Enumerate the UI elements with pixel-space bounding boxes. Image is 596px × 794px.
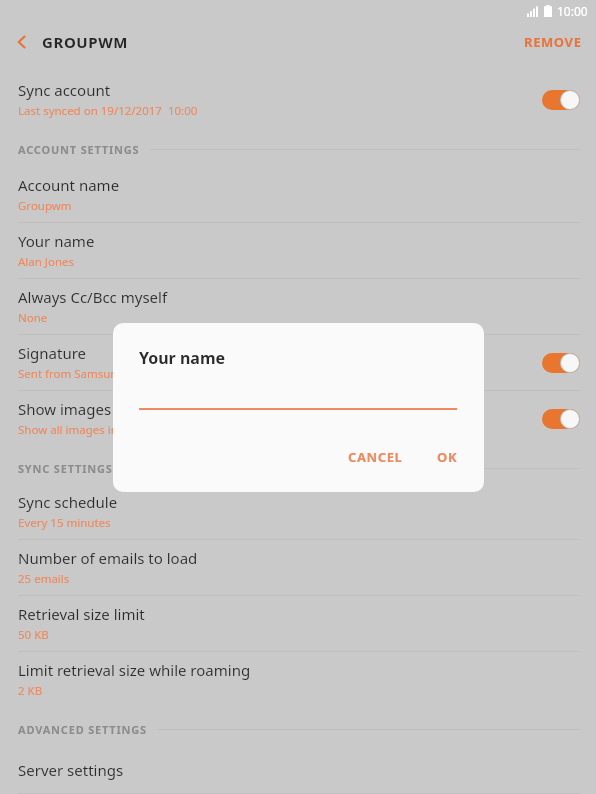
staticText: Signature xyxy=(18,343,87,363)
staticText: Last synced on 19/12/2017 10:00 xyxy=(18,103,198,119)
staticText: Server settings xyxy=(18,760,124,780)
button[interactable]: Retrieval size limit xyxy=(0,596,596,652)
staticText: 10:00 xyxy=(557,3,588,19)
button[interactable]: Show images xyxy=(0,391,596,446)
button[interactable]: Your name xyxy=(0,223,596,279)
staticText: Show all images in emails xyxy=(18,422,156,438)
button[interactable]: Toggle Signature xyxy=(542,353,580,373)
staticText: CANCEL xyxy=(348,448,403,466)
button[interactable]: Toggle Sync account xyxy=(542,90,580,110)
button[interactable]: Number of emails to load xyxy=(0,540,596,596)
staticText: Retrieval size limit xyxy=(18,604,145,624)
staticText: None xyxy=(18,310,48,326)
staticText: 50 KB xyxy=(18,627,49,643)
staticText: OK xyxy=(437,448,458,466)
staticText: GROUPWM xyxy=(42,32,129,52)
staticText: Number of emails to load xyxy=(18,548,198,568)
staticText: Every 15 minutes xyxy=(18,515,111,531)
staticText: Sync schedule xyxy=(18,492,118,512)
button[interactable]: Sync schedule xyxy=(0,484,596,540)
staticText: Account name xyxy=(18,175,120,195)
button[interactable]: Sync account xyxy=(0,72,596,127)
staticText: Your name xyxy=(139,347,226,369)
button[interactable]: CANCEL xyxy=(336,440,415,474)
button[interactable]: Signature xyxy=(0,335,596,391)
staticText: Alan Jones xyxy=(18,254,75,270)
staticText: Your name xyxy=(18,231,95,251)
button[interactable]: REMOVE xyxy=(510,25,596,59)
staticText: ADVANCED SETTINGS xyxy=(18,722,147,737)
staticText: Sent from Samsung tablet xyxy=(18,366,159,382)
button[interactable]: Server settings xyxy=(0,747,596,794)
button[interactable]: Account name xyxy=(0,167,596,223)
staticText: 25 emails xyxy=(18,571,70,587)
staticText: Sync account xyxy=(18,80,111,100)
staticText: Limit retrieval size while roaming xyxy=(18,660,251,680)
staticText: Show images xyxy=(18,399,112,419)
button[interactable]: Limit retrieval size while roaming xyxy=(0,652,596,707)
staticText: SYNC SETTINGS xyxy=(18,461,113,476)
button[interactable]: OK xyxy=(425,440,470,474)
button[interactable]: Toggle Show images xyxy=(542,409,580,429)
staticText: 2 KB xyxy=(18,683,43,699)
button[interactable]: Back xyxy=(0,22,44,62)
staticText: Always Cc/Bcc myself xyxy=(18,287,168,307)
staticText: REMOVE xyxy=(524,33,582,51)
staticText: Groupwm xyxy=(18,198,72,214)
staticText: ACCOUNT SETTINGS xyxy=(18,142,140,157)
button[interactable]: Always Cc/Bcc myself xyxy=(0,279,596,335)
